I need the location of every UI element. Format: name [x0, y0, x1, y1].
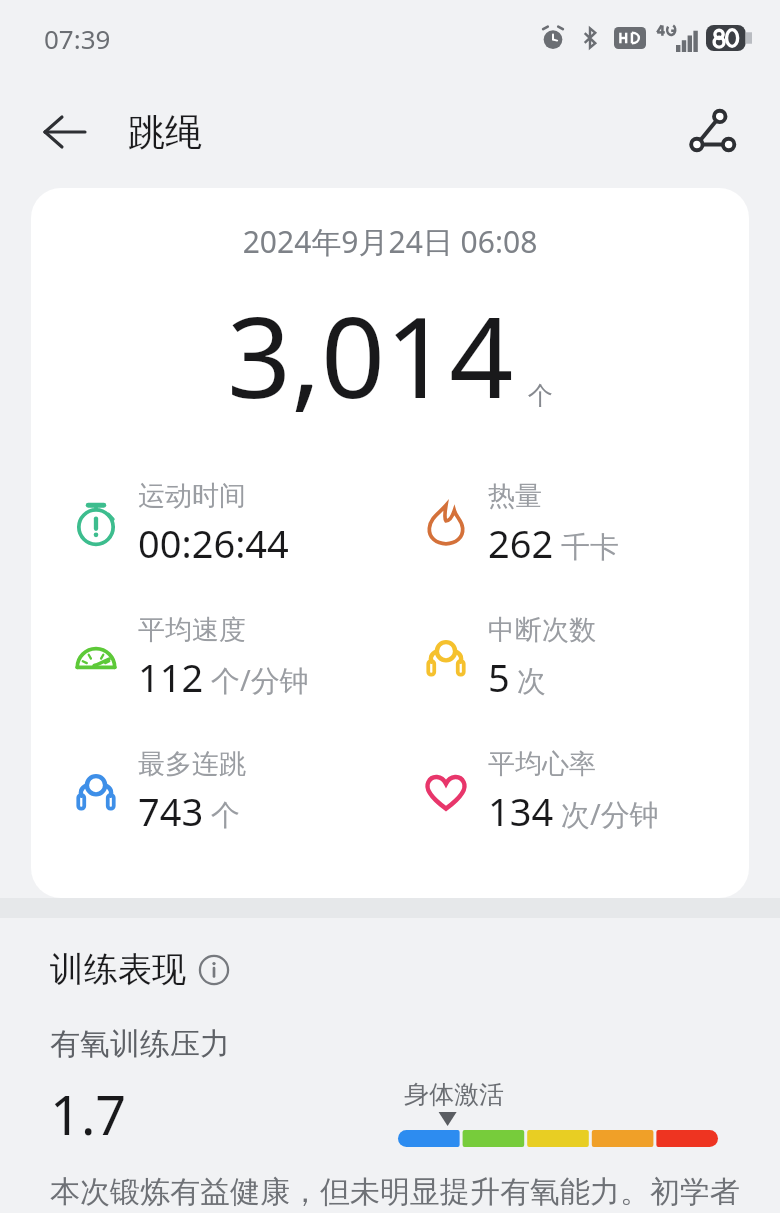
staticText: 112	[138, 651, 204, 703]
staticText: 身体激活	[404, 1079, 504, 1110]
staticText: 中断次数	[488, 613, 596, 647]
staticText: 07:39	[44, 21, 111, 56]
button[interactable]: 运动时间	[68, 479, 390, 569]
staticText: 运动时间	[138, 479, 246, 513]
button[interactable]: 2024年9月24日 06:08	[31, 188, 749, 898]
staticText: 个	[211, 797, 240, 834]
staticText: 3,014	[227, 278, 514, 431]
staticText: 1.7	[50, 1077, 127, 1151]
staticText: 平均速度	[138, 613, 246, 647]
staticText: 平均心率	[488, 747, 596, 781]
staticText: 5	[488, 651, 510, 703]
staticText: 热量	[488, 479, 542, 513]
staticText: 最多连跳	[138, 747, 246, 781]
button[interactable]: 平均速度	[68, 613, 390, 703]
button[interactable]: 平均心率	[418, 747, 749, 837]
staticText: 训练表现	[50, 948, 186, 991]
staticText: 262	[488, 517, 554, 569]
staticText: 743	[138, 785, 204, 837]
button[interactable]: 中断次数	[418, 613, 749, 703]
staticText: 有氧训练压力	[50, 1025, 230, 1063]
staticText: 千卡	[561, 529, 619, 566]
button[interactable]: Back	[34, 101, 96, 163]
staticText: 134	[488, 785, 554, 837]
staticText: 个/分钟	[211, 660, 309, 700]
staticText: 2024年9月24日 06:08	[31, 221, 749, 262]
staticText: 次/分钟	[561, 794, 659, 834]
staticText: 跳绳	[128, 109, 202, 156]
button[interactable]: 训练表现	[50, 948, 230, 991]
button[interactable]: Share	[682, 101, 744, 163]
staticText: 00:26:44	[138, 517, 289, 569]
button[interactable]: 热量	[418, 479, 749, 569]
staticText: 个	[528, 380, 553, 411]
staticText: 本次锻炼有益健康，但未明显提升有氧能力。初学者或长期	[50, 1173, 750, 1213]
button[interactable]: 最多连跳	[68, 747, 390, 837]
staticText: 次	[517, 663, 546, 700]
